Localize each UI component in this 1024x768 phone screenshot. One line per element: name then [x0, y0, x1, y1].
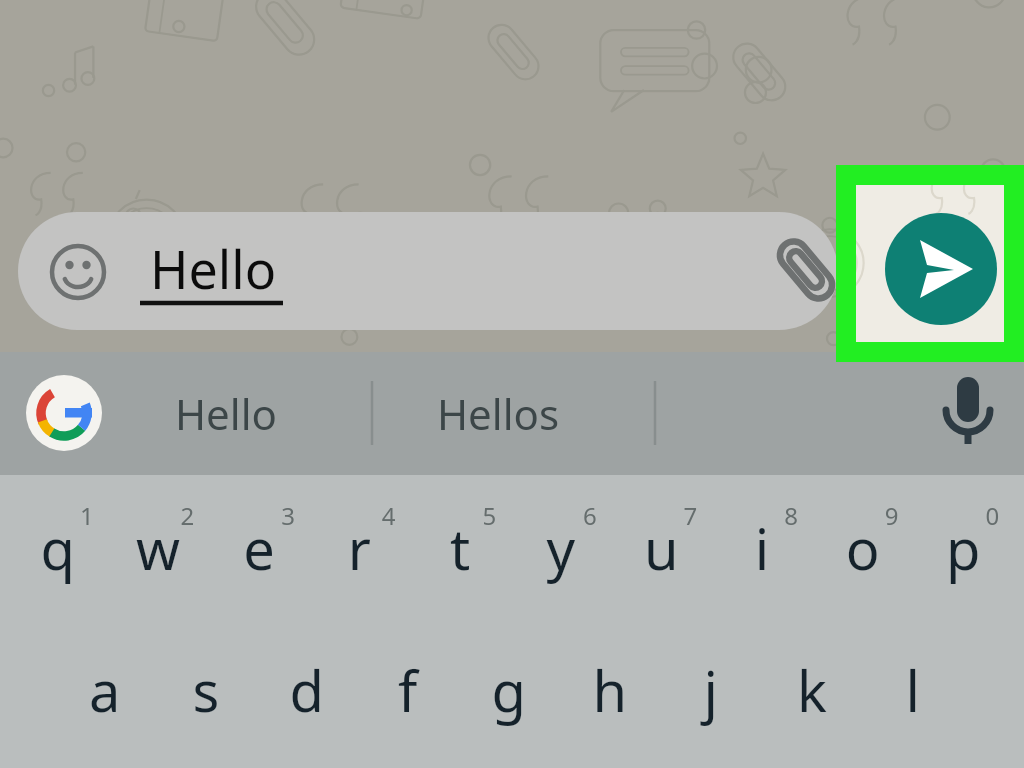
- button[interactable]: Voice input: [930, 372, 1006, 452]
- button[interactable]: d: [257, 632, 353, 752]
- button[interactable]: Emoji: [52, 246, 104, 298]
- button[interactable]: a: [55, 632, 151, 752]
- button[interactable]: i: [715, 490, 811, 610]
- button[interactable]: h: [560, 632, 656, 752]
- button[interactable]: t: [412, 490, 508, 610]
- button[interactable]: p: [917, 490, 1013, 610]
- button[interactable]: j: [661, 632, 757, 752]
- button[interactable]: Message input field: [18, 212, 838, 330]
- button[interactable]: Hello: [120, 360, 360, 450]
- button[interactable]: s: [156, 632, 252, 752]
- button[interactable]: q: [8, 490, 104, 610]
- button[interactable]: Send: [885, 213, 997, 325]
- button[interactable]: w: [109, 490, 205, 610]
- button[interactable]: r: [311, 490, 407, 610]
- button[interactable]: k: [762, 632, 858, 752]
- button[interactable]: l: [863, 632, 959, 752]
- button[interactable]: g: [459, 632, 555, 752]
- button[interactable]: y: [513, 490, 609, 610]
- button[interactable]: o: [816, 490, 912, 610]
- button[interactable]: u: [614, 490, 710, 610]
- button[interactable]: Attach: [778, 242, 834, 298]
- button[interactable]: e: [210, 490, 306, 610]
- button[interactable]: Hellos: [390, 360, 640, 450]
- button[interactable]: Google: [26, 375, 102, 451]
- button[interactable]: f: [358, 632, 454, 752]
